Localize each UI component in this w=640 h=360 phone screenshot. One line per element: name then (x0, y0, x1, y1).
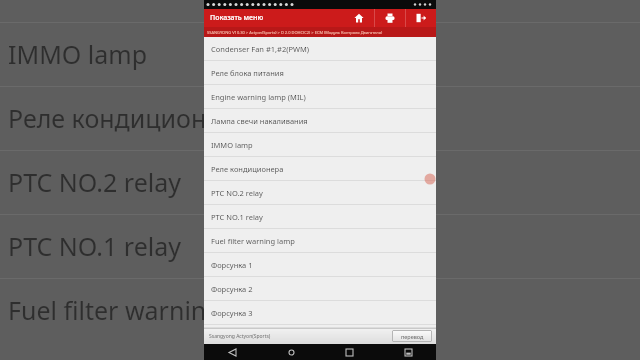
button[interactable]: PTC NO.2 relay (204, 181, 436, 205)
staticText: Ssangyong Actyon(Sports) (209, 333, 271, 340)
staticText: Engine warning lamp (MIL) (211, 92, 306, 102)
staticText: IMMO lamp (211, 140, 253, 150)
staticText: SSANGYONG V10.30 > Actyon(Sports) > D 2.… (207, 30, 383, 35)
button[interactable]: Реле блока питания (204, 61, 436, 85)
button[interactable]: Engine warning lamp (MIL) (204, 85, 436, 109)
staticText: Лампа свечи накаливания (211, 116, 308, 126)
button[interactable]: PTC NO.1 relay (204, 205, 436, 229)
staticText: Реле кондиционера (211, 164, 284, 174)
button[interactable]: Лампа свечи накаливания (204, 109, 436, 133)
button[interactable]: Форсунка 2 (204, 277, 436, 301)
staticText: Показать меню (210, 13, 344, 23)
button[interactable]: Screenshot (396, 344, 420, 360)
staticText: PTC NO.2 relay (211, 188, 263, 198)
staticText: PTC NO.1 relay (211, 212, 263, 222)
button[interactable]: Recents (337, 344, 361, 360)
staticText: Fuel filter warning lamp (211, 236, 295, 246)
staticText: Форсунка 1 (211, 260, 253, 270)
staticText: Форсунка 3 (211, 308, 253, 318)
button[interactable]: Реле кондиционера (204, 157, 436, 181)
staticText: Реле кондиционера (8, 101, 250, 135)
button[interactable]: Home (279, 344, 303, 360)
button[interactable]: Форсунка 1 (204, 253, 436, 277)
staticText: PTC NO.2 relay (8, 165, 182, 199)
button[interactable]: Print (375, 9, 405, 27)
staticText: Форсунка 2 (211, 284, 253, 294)
button[interactable]: Home (344, 9, 374, 27)
staticText: Реле блока питания (211, 68, 284, 78)
button[interactable]: Fuel filter warning lamp (204, 229, 436, 253)
staticText: PTC NO.1 relay (8, 229, 182, 263)
button[interactable]: Форсунка 4 (204, 325, 436, 328)
button[interactable]: IMMO lamp (204, 133, 436, 157)
button[interactable]: Back (220, 344, 244, 360)
button[interactable]: Condenser Fan #1,#2(PWM) (204, 37, 436, 61)
button[interactable]: Форсунка 3 (204, 301, 436, 325)
staticText: Форсунка 4 (211, 325, 253, 328)
staticText: Fuel filter warning lamp (8, 293, 288, 327)
staticText: IMMO lamp (8, 37, 148, 71)
staticText: перевод (401, 333, 424, 340)
staticText: Condenser Fan #1,#2(PWM) (211, 44, 310, 54)
button[interactable]: перевод (392, 330, 432, 342)
button[interactable]: Exit (406, 9, 436, 27)
